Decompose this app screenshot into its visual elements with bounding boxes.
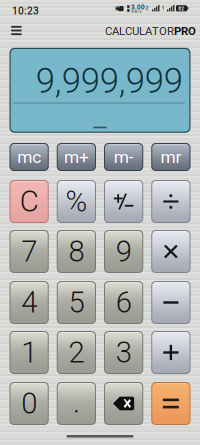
staticText: 4 [21, 285, 37, 320]
staticText: 9,999,999 [36, 60, 183, 101]
button[interactable]: Equals [151, 382, 190, 425]
button[interactable]: 7 [9, 230, 49, 273]
button[interactable]: Minus [151, 281, 190, 324]
staticText: 2 [146, 5, 149, 11]
staticText: C [20, 184, 39, 219]
staticText: VPN [116, 3, 124, 13]
staticText: mc [17, 147, 41, 167]
staticText: . [73, 385, 80, 420]
staticText: mr [160, 147, 181, 167]
staticText: PRO [174, 25, 196, 38]
button[interactable]: Multiply [151, 230, 190, 273]
staticText: 5 [68, 285, 84, 320]
staticText: 1 [21, 335, 37, 370]
button[interactable]: 2 [57, 331, 96, 374]
button[interactable]: 3 [104, 331, 143, 374]
button[interactable]: Plus [151, 331, 190, 374]
button[interactable]: Backspace [104, 382, 143, 425]
staticText: 8 [68, 234, 84, 269]
staticText: 3 [116, 335, 132, 370]
staticText: 82 [178, 6, 184, 12]
button[interactable]: 4 [9, 281, 49, 324]
staticText: 0 [21, 386, 37, 421]
staticText: CALCULATOR [105, 25, 174, 38]
staticText: m+ [64, 147, 89, 167]
staticText: 7 [21, 234, 37, 269]
button[interactable]: C [9, 180, 49, 223]
button[interactable]: 0 [9, 382, 49, 425]
button[interactable]: 1 [9, 331, 49, 374]
staticText: m- [114, 147, 134, 167]
button[interactable]: 6 [104, 281, 143, 324]
button[interactable]: . [57, 382, 96, 425]
staticText: 3.00 [131, 4, 145, 11]
staticText: KB/s [131, 9, 141, 14]
staticText: 10:23 [12, 5, 39, 17]
button[interactable]: mc [9, 143, 49, 171]
staticText: % [65, 184, 87, 219]
staticText: 2 [68, 335, 84, 370]
staticText: 1 [162, 5, 165, 11]
button[interactable]: % [57, 180, 96, 223]
button[interactable]: m+ [57, 143, 96, 171]
button[interactable]: mr [151, 143, 190, 171]
button[interactable]: 9 [104, 230, 143, 273]
button[interactable]: 8 [57, 230, 96, 273]
staticText: 9 [116, 234, 132, 269]
button[interactable]: m- [104, 143, 143, 171]
button[interactable]: Plus minus [104, 180, 143, 223]
staticText: 6 [116, 285, 132, 320]
button[interactable]: Menu [10, 19, 34, 41]
button[interactable]: 5 [57, 281, 96, 324]
button[interactable]: Divide [151, 180, 190, 223]
